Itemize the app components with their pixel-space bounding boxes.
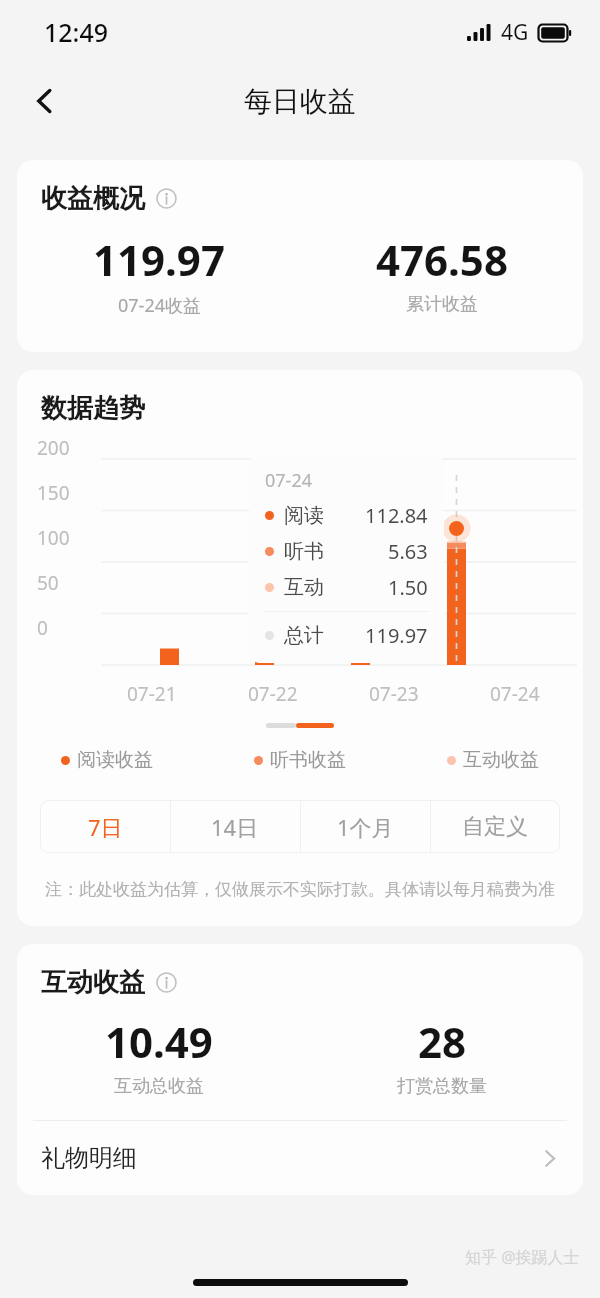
staticText: 1.50 [388,574,428,601]
staticText: 07-22 [248,681,298,707]
staticText: 互动 [284,575,324,600]
staticText: 听书收益 [270,748,346,772]
staticText: 0 [37,615,48,641]
staticText: 07-24 [265,468,312,493]
button[interactable]: 1个月 [300,800,430,853]
staticText: 互动收益 [463,748,539,772]
staticText: 互动收益 [41,966,145,999]
staticText: 1个月 [337,812,394,842]
staticText: 07-24收益 [118,293,201,318]
staticText: 注：此处收益为估算，仅做展示不实际打款。具体请以每月稿费为准 [35,879,565,900]
button[interactable]: 自定义 [430,800,560,853]
staticText: 10.49 [105,1013,213,1070]
staticText: 100 [37,525,70,551]
button[interactable]: 礼物明细 [17,1121,583,1195]
staticText: 28 [418,1013,467,1070]
staticText: 14日 [211,812,259,842]
staticText: 119.97 [93,231,225,288]
staticText: 互动总收益 [114,1075,204,1098]
staticText: 07-23 [369,681,419,707]
staticText: 总计 [284,623,324,648]
staticText: 07-21 [127,681,177,707]
staticText: 听书 [284,539,324,564]
staticText: 119.97 [365,622,428,649]
staticText: 收益概况 [41,182,145,215]
staticText: 知乎 @挨踢人士 [465,1246,580,1268]
button[interactable]: 7日 [40,800,170,853]
staticText: 476.58 [376,231,508,288]
staticText: 数据趋势 [41,392,145,425]
staticText: 礼物明细 [41,1143,137,1173]
staticText: 阅读收益 [77,748,153,772]
staticText: 累计收益 [406,293,478,316]
staticText: 07-24 [490,681,540,707]
staticText: 112.84 [365,502,428,529]
staticText: 50 [37,570,59,596]
staticText: 5.63 [388,538,428,565]
button[interactable]: Info [156,188,177,209]
button[interactable]: Info [156,972,177,993]
staticText: 4G [501,18,529,47]
button[interactable]: Back [16,72,74,130]
staticText: 阅读 [284,503,324,528]
staticText: 12:49 [44,15,109,49]
staticText: 自定义 [462,813,528,841]
staticText: 打赏总数量 [397,1075,487,1098]
button[interactable]: 14日 [170,800,300,853]
staticText: 150 [37,480,70,506]
staticText: 200 [37,435,70,461]
staticText: 7日 [88,812,123,842]
staticText: 每日收益 [244,84,356,119]
